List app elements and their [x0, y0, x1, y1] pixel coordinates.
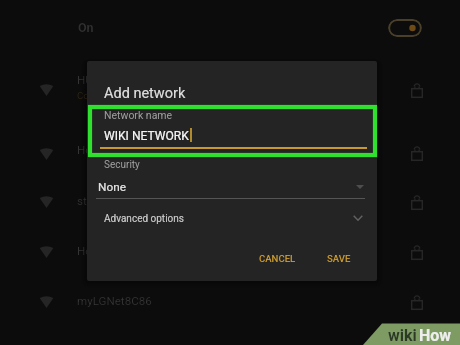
staticText: Network name	[104, 109, 173, 121]
staticText: Advanced options	[104, 213, 184, 225]
staticText: Home_Net_2.4	[77, 143, 153, 157]
staticText: How	[419, 326, 452, 345]
button[interactable]	[0, 70, 460, 114]
staticText: HUAWEI-E5330s	[77, 73, 162, 87]
staticText: myLGNet8C86	[77, 294, 152, 308]
other: Wi-Fi signal	[39, 84, 54, 96]
other: Secured network	[411, 146, 423, 161]
button[interactable]: Wi-Fi on/off toggle	[388, 19, 422, 37]
other: Secured network	[411, 245, 423, 260]
other: Secured network	[411, 295, 423, 310]
other: Secured network	[411, 195, 423, 210]
staticText: None	[98, 180, 126, 194]
staticText: Add network	[104, 85, 186, 102]
button[interactable]	[96, 207, 366, 231]
button[interactable]	[0, 134, 460, 178]
button[interactable]	[0, 282, 460, 326]
other: Wi-Fi signal	[39, 296, 54, 308]
other: Wi-Fi signal	[39, 246, 54, 258]
staticText: Hotspot_5G	[77, 244, 139, 258]
other: Open security dropdown	[356, 185, 364, 189]
staticText: SAVE	[327, 253, 351, 264]
button[interactable]	[0, 182, 460, 226]
staticText: wiki	[388, 326, 417, 345]
other: Wi-Fi signal	[39, 196, 54, 208]
staticText: Connected	[77, 90, 124, 101]
button[interactable]	[0, 232, 460, 276]
other: Wi-Fi signal	[39, 148, 54, 160]
staticText: Security	[104, 159, 140, 171]
staticText: WIKI NETWORK	[104, 129, 189, 143]
staticText: stiffler_EXT	[77, 194, 136, 208]
staticText: CANCEL	[259, 253, 296, 264]
staticText: On	[78, 20, 94, 35]
other: Secured network	[411, 83, 423, 98]
button[interactable]	[320, 247, 358, 270]
button[interactable]	[251, 247, 304, 270]
